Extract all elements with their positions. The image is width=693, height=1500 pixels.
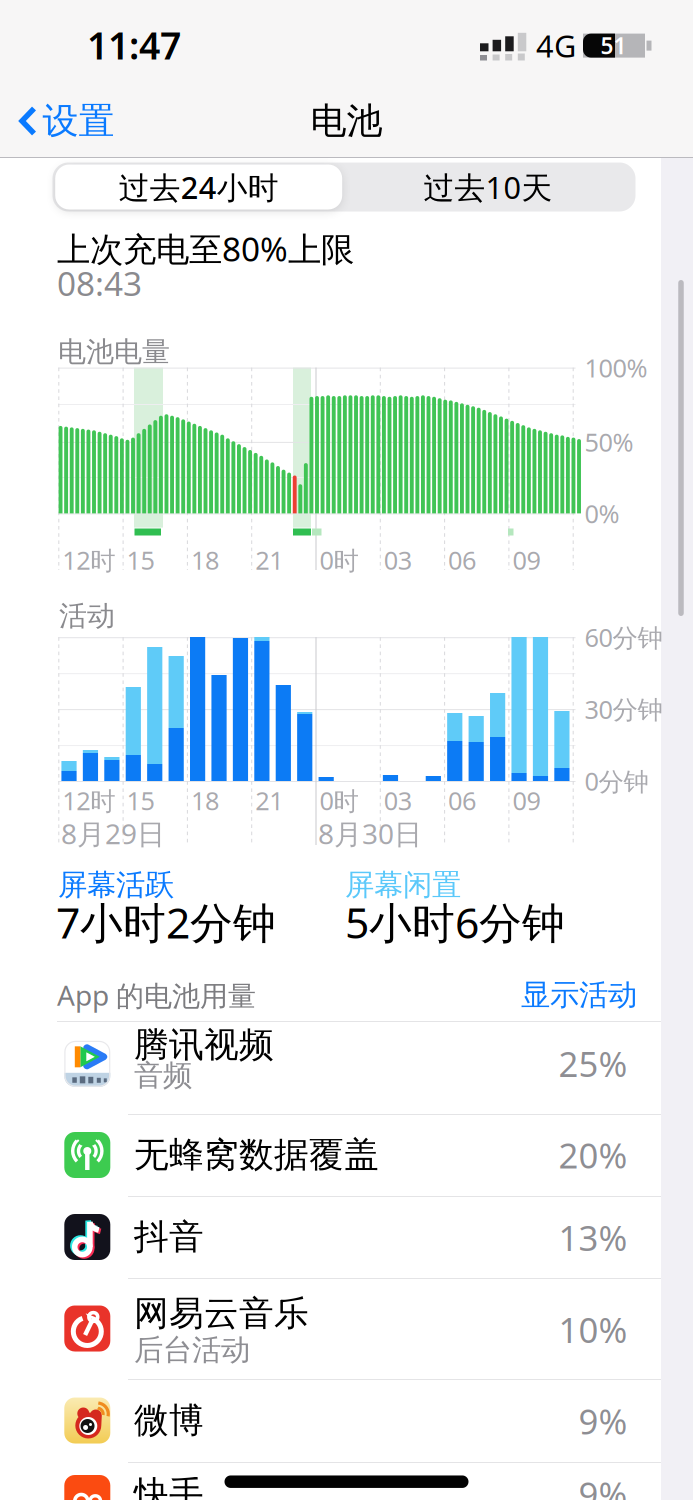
staticText: 9%	[578, 1471, 627, 1500]
staticText: 10%	[558, 1306, 627, 1352]
staticText: 06	[448, 784, 476, 817]
staticText: 15	[127, 543, 155, 577]
staticText: 显示活动	[521, 977, 637, 1013]
staticText: 5小时6分钟	[345, 894, 565, 950]
staticText: 活动	[59, 599, 115, 633]
staticText: 30分钟	[584, 692, 662, 726]
staticText: 100%	[584, 351, 647, 384]
staticText: 11:47	[87, 20, 181, 70]
staticText: 13%	[558, 1214, 627, 1260]
staticText: 上次充电至80%上限	[57, 226, 354, 271]
staticText: 12时	[62, 543, 115, 577]
button[interactable]: 过去24小时	[55, 164, 342, 209]
staticText: 18	[191, 784, 219, 817]
staticText: 设置	[42, 99, 114, 143]
staticText: 20%	[558, 1132, 627, 1178]
staticText: 0时	[319, 543, 358, 577]
staticText: 9%	[578, 1398, 627, 1444]
staticText: 0分钟	[584, 764, 648, 798]
staticText: 15	[127, 784, 155, 817]
button[interactable]: 腾讯视频	[0, 1021, 661, 1114]
staticText: 音频	[134, 1057, 192, 1093]
staticText: 09	[512, 784, 540, 817]
staticText: 8月29日	[61, 815, 165, 852]
staticText: 03	[384, 543, 412, 577]
button[interactable]: 过去10天	[344, 164, 631, 209]
staticText: 过去10天	[423, 167, 552, 207]
staticText: 09	[512, 543, 540, 577]
staticText: 60分钟	[584, 620, 662, 654]
staticText: App 的电池用量	[57, 976, 256, 1014]
staticText: 4G	[536, 25, 576, 66]
staticText: 微博	[134, 1399, 204, 1442]
staticText: 网易云音乐	[134, 1292, 309, 1335]
staticText: 屏幕闲置	[345, 867, 461, 903]
staticText: 过去24小时	[119, 167, 279, 207]
button[interactable]: 快手	[0, 1462, 661, 1500]
staticText: 屏幕活跃	[58, 867, 174, 903]
staticText: 51	[600, 30, 626, 60]
staticText: 腾讯视频	[134, 1024, 274, 1066]
staticText: 抖音	[134, 1216, 204, 1258]
staticText: 后台活动	[134, 1332, 250, 1368]
button[interactable]: 无蜂窝数据覆盖	[0, 1114, 661, 1196]
staticText: 03	[384, 784, 412, 817]
staticText: 0时	[319, 784, 358, 817]
staticText: 50%	[584, 425, 633, 459]
button[interactable]: 微博	[0, 1379, 661, 1462]
staticText: 8月30日	[318, 815, 422, 852]
staticText: 12时	[62, 784, 115, 817]
staticText: 06	[448, 543, 476, 577]
staticText: 25%	[558, 1040, 627, 1086]
staticText: 7小时2分钟	[56, 894, 276, 950]
button[interactable]: 返回设置	[0, 99, 120, 143]
staticText: 08:43	[57, 261, 142, 305]
staticText: 21	[255, 543, 283, 577]
staticText: 电池电量	[58, 335, 170, 369]
staticText: 21	[255, 784, 283, 817]
staticText: 18	[191, 543, 219, 577]
staticText: 无蜂窝数据覆盖	[134, 1134, 379, 1176]
staticText: 电池	[310, 99, 382, 143]
staticText: 0%	[584, 497, 619, 530]
button[interactable]: 网易云音乐	[0, 1278, 661, 1379]
staticText: 快手	[134, 1473, 204, 1500]
button[interactable]: 显示活动	[507, 977, 637, 1013]
button[interactable]: 抖音	[0, 1196, 661, 1278]
